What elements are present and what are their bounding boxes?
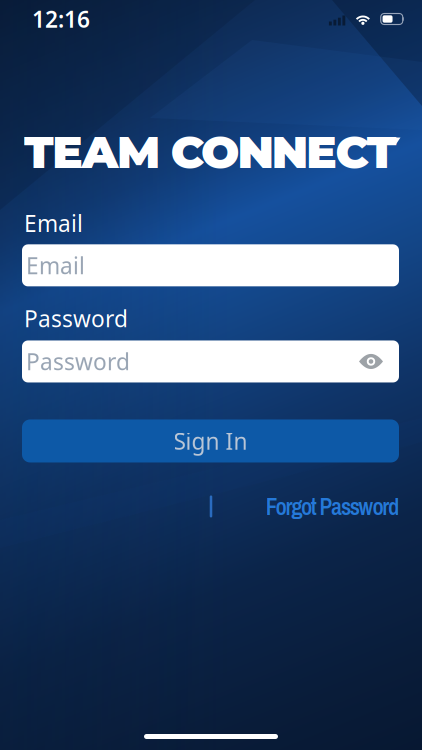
staticText: Password [26, 346, 130, 376]
staticText: Sign In [173, 426, 247, 456]
staticText: Email [26, 250, 85, 280]
staticText: Forgot Password [266, 491, 399, 522]
button[interactable]: Forgot Password [266, 491, 399, 522]
button[interactable]: Email [22, 244, 399, 286]
staticText: Password [24, 303, 128, 333]
staticText: TEAM CONNECT [24, 124, 397, 179]
button[interactable]: Password [22, 340, 399, 382]
button[interactable]: Sign In [22, 419, 399, 462]
staticText: Email [24, 208, 83, 238]
staticText: 12:16 [32, 4, 90, 34]
